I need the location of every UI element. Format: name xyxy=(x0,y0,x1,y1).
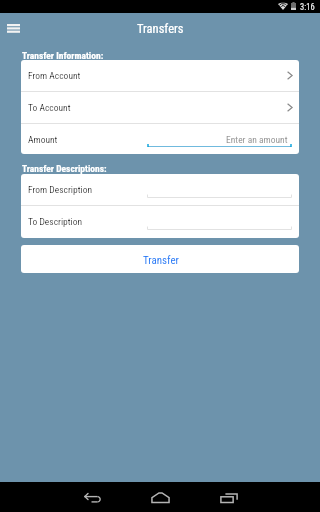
staticText: Transfers xyxy=(137,21,184,36)
staticText: Transfer Information: xyxy=(22,50,104,61)
staticText: From Description xyxy=(28,184,93,195)
staticText: From Account xyxy=(28,70,81,81)
button[interactable]: To Account xyxy=(21,92,299,123)
staticText: Amount xyxy=(28,134,58,145)
button[interactable]: From Account xyxy=(21,60,299,91)
staticText: To Account xyxy=(28,102,71,113)
button[interactable]: Recent apps xyxy=(207,476,251,512)
button[interactable]: Menu xyxy=(1,16,25,40)
staticText: To Description xyxy=(28,216,83,227)
staticText: 3:16 xyxy=(300,2,315,12)
button[interactable]: Transfer xyxy=(21,245,299,273)
staticText: Transfer xyxy=(143,254,179,267)
button[interactable]: Back xyxy=(70,476,114,512)
staticText: Enter an amount xyxy=(226,134,288,145)
staticText: Transfer Descriptions: xyxy=(22,163,107,174)
button[interactable]: Home xyxy=(138,475,182,512)
